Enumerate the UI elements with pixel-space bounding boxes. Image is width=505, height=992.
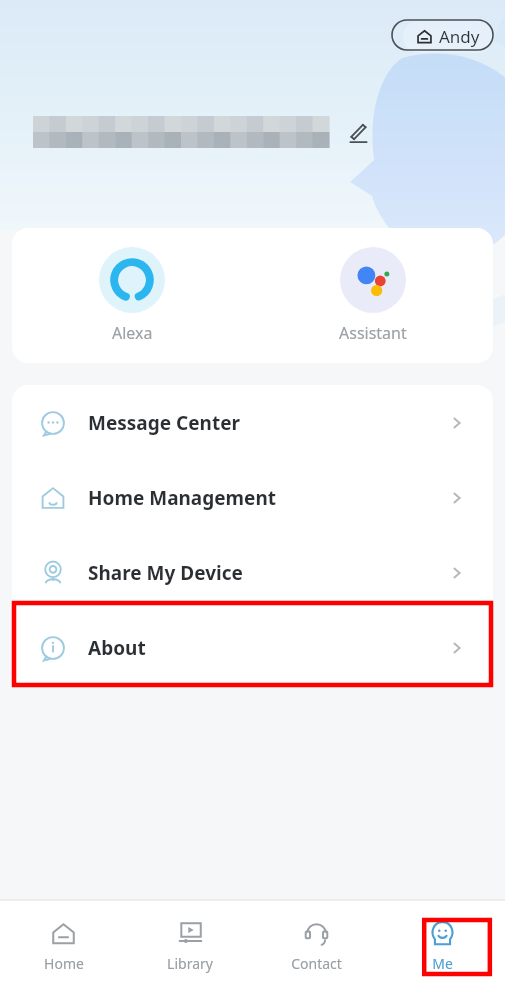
staticText: Library bbox=[167, 954, 213, 973]
button[interactable]: Andy bbox=[403, 20, 493, 53]
button[interactable]: Me bbox=[379, 900, 505, 992]
staticText: Me bbox=[432, 954, 453, 973]
button[interactable]: Home Management bbox=[12, 460, 493, 535]
staticText: Home bbox=[44, 954, 84, 973]
staticText: Andy bbox=[439, 25, 480, 48]
button[interactable]: Contact bbox=[253, 900, 379, 992]
staticText: About bbox=[88, 635, 146, 661]
button[interactable]: About bbox=[12, 610, 493, 685]
button[interactable]: Share My Device bbox=[12, 535, 493, 610]
staticText: Assistant bbox=[339, 322, 407, 344]
button[interactable]: Home bbox=[0, 900, 127, 992]
staticText: Message Center bbox=[88, 410, 240, 436]
button[interactable]: Library bbox=[127, 900, 253, 992]
staticText: Home Management bbox=[88, 485, 277, 511]
staticText: Alexa bbox=[112, 322, 153, 344]
button[interactable]: Edit name bbox=[340, 114, 376, 150]
staticText: Contact bbox=[291, 954, 342, 973]
button[interactable]: Alexa bbox=[12, 228, 252, 363]
button[interactable]: Assistant bbox=[252, 228, 493, 363]
button[interactable]: Message Center bbox=[12, 385, 493, 460]
staticText: Share My Device bbox=[88, 560, 243, 586]
